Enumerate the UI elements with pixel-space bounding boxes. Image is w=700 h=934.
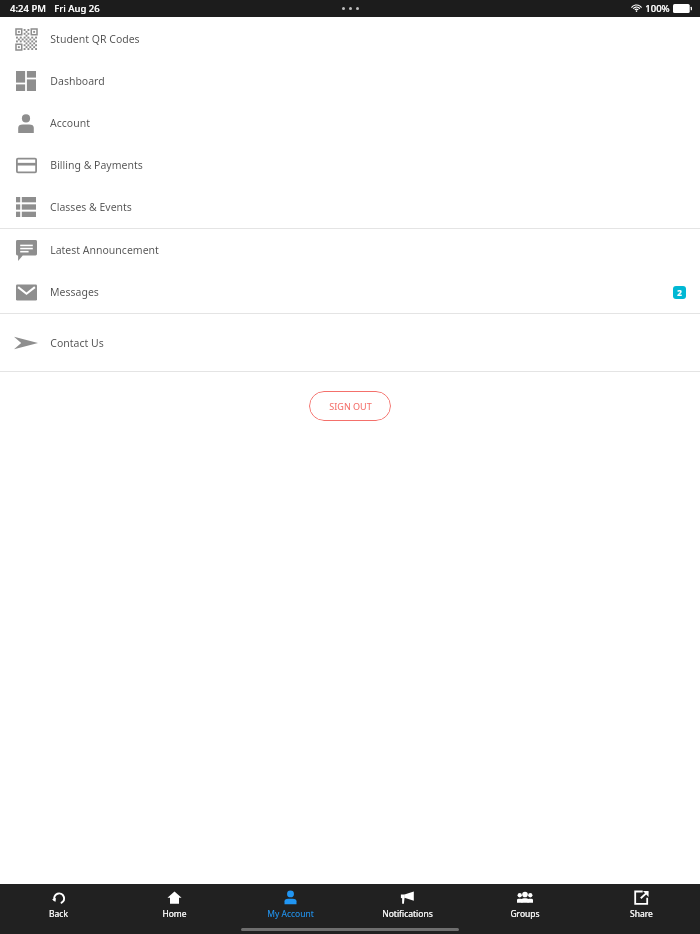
other: Back bbox=[51, 890, 66, 905]
button[interactable]: Billing & Payments bbox=[0, 144, 700, 186]
button[interactable]: Latest Announcement bbox=[0, 229, 700, 271]
button[interactable]: Dashboard bbox=[0, 60, 700, 102]
button[interactable]: Student QR Codes bbox=[0, 17, 700, 60]
staticText: 2 bbox=[677, 287, 682, 298]
staticText: Latest Announcement bbox=[50, 243, 159, 257]
button[interactable]: Groups bbox=[466, 889, 583, 920]
staticText: 4:24 PM bbox=[10, 2, 46, 15]
staticText: Home bbox=[162, 908, 187, 920]
button[interactable]: Notifications bbox=[349, 889, 466, 920]
button[interactable]: My Account bbox=[232, 889, 349, 920]
other: My Account bbox=[283, 890, 298, 905]
staticText: Billing & Payments bbox=[50, 158, 143, 172]
other: Share bbox=[634, 890, 649, 905]
staticText: Contact Us bbox=[50, 336, 104, 350]
staticText: Student QR Codes bbox=[50, 32, 140, 46]
button[interactable]: SIGN OUT bbox=[309, 391, 391, 421]
staticText: Groups bbox=[510, 908, 540, 920]
staticText: Back bbox=[49, 908, 68, 920]
button[interactable]: Contact Us bbox=[0, 314, 700, 371]
staticText: Share bbox=[630, 908, 653, 920]
button[interactable]: Classes & Events bbox=[0, 186, 700, 228]
staticText: Classes & Events bbox=[50, 200, 132, 214]
other: Home bbox=[167, 890, 182, 905]
staticText: 100% bbox=[645, 2, 670, 15]
button[interactable]: Share bbox=[583, 889, 700, 920]
staticText: Notifications bbox=[382, 908, 433, 920]
staticText: Messages bbox=[50, 285, 99, 299]
staticText: Fri Aug 26 bbox=[54, 2, 100, 15]
button[interactable]: Home bbox=[116, 889, 232, 920]
staticText: My Account bbox=[267, 908, 314, 920]
other: Groups bbox=[517, 890, 533, 906]
button[interactable]: Messages bbox=[0, 271, 700, 313]
button[interactable]: Account bbox=[0, 102, 700, 144]
other: Notifications bbox=[400, 890, 415, 905]
staticText: Dashboard bbox=[50, 74, 105, 88]
staticText: SIGN OUT bbox=[329, 400, 372, 412]
staticText: Account bbox=[50, 116, 90, 130]
button[interactable]: Back bbox=[0, 889, 116, 920]
